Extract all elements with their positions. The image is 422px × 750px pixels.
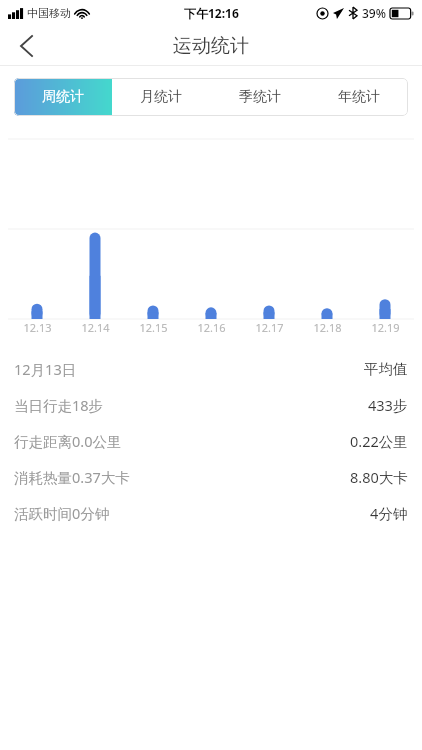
staticText: 12.19 [371, 320, 400, 335]
staticText: 0.22公里 [350, 431, 408, 451]
staticText: 活跃时间0分钟 [14, 503, 110, 523]
staticText: 平均值 [364, 360, 408, 378]
button[interactable]: 消耗热量0.37大卡 [0, 459, 422, 495]
button[interactable]: 行走距离0.0公里 [0, 423, 422, 459]
button[interactable]: 年统计 [309, 78, 408, 116]
staticText: 12.16 [197, 320, 226, 335]
staticText: 12.13 [23, 320, 52, 335]
staticText: 8.80大卡 [350, 467, 408, 487]
staticText: 12.17 [255, 320, 284, 335]
staticText: 下午12:16 [184, 5, 239, 21]
staticText: 季统计 [239, 88, 281, 106]
staticText: 运动统计 [173, 34, 249, 58]
button[interactable]: 季统计 [210, 78, 309, 116]
button[interactable]: 周统计 [14, 78, 112, 116]
staticText: 433步 [368, 395, 408, 415]
button[interactable]: 12月13日 [0, 351, 422, 387]
button[interactable]: 月统计 [112, 78, 210, 116]
staticText: 月统计 [140, 88, 182, 106]
button[interactable]: 活跃时间0分钟 [0, 495, 422, 531]
staticText: 中国移动 [27, 6, 71, 20]
staticText: 12.18 [313, 320, 342, 335]
staticText: 12.15 [139, 320, 168, 335]
button[interactable]: Back [6, 26, 46, 66]
staticText: 消耗热量0.37大卡 [14, 467, 130, 487]
staticText: 当日行走18步 [14, 395, 104, 415]
staticText: 12月13日 [14, 359, 77, 379]
staticText: 39% [362, 5, 386, 21]
staticText: 周统计 [42, 88, 84, 106]
staticText: 行走距离0.0公里 [14, 431, 122, 451]
button[interactable]: 当日行走18步 [0, 387, 422, 423]
staticText: 4分钟 [370, 503, 408, 523]
staticText: 12.14 [81, 320, 110, 335]
staticText: 年统计 [338, 88, 380, 106]
